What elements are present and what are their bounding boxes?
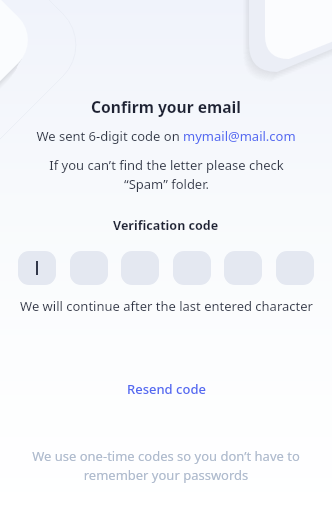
button[interactable] [121,251,159,285]
staticText: We sent 6-digit code on mymail@mail.com [36,127,296,145]
button[interactable] [70,251,108,285]
button[interactable] [173,251,211,285]
staticText: We use one-time codes so you don’t have … [32,447,300,483]
button[interactable] [224,251,262,285]
button[interactable] [276,251,314,285]
staticText: Verification code [113,217,219,234]
button[interactable] [18,251,56,285]
button[interactable]: Resend code [119,375,214,403]
staticText: If you can’t find the letter please chec… [49,156,284,193]
staticText: We will continue after the last entered … [20,297,313,315]
staticText: Confirm your email [91,96,241,117]
staticText: Resend code [127,380,206,398]
